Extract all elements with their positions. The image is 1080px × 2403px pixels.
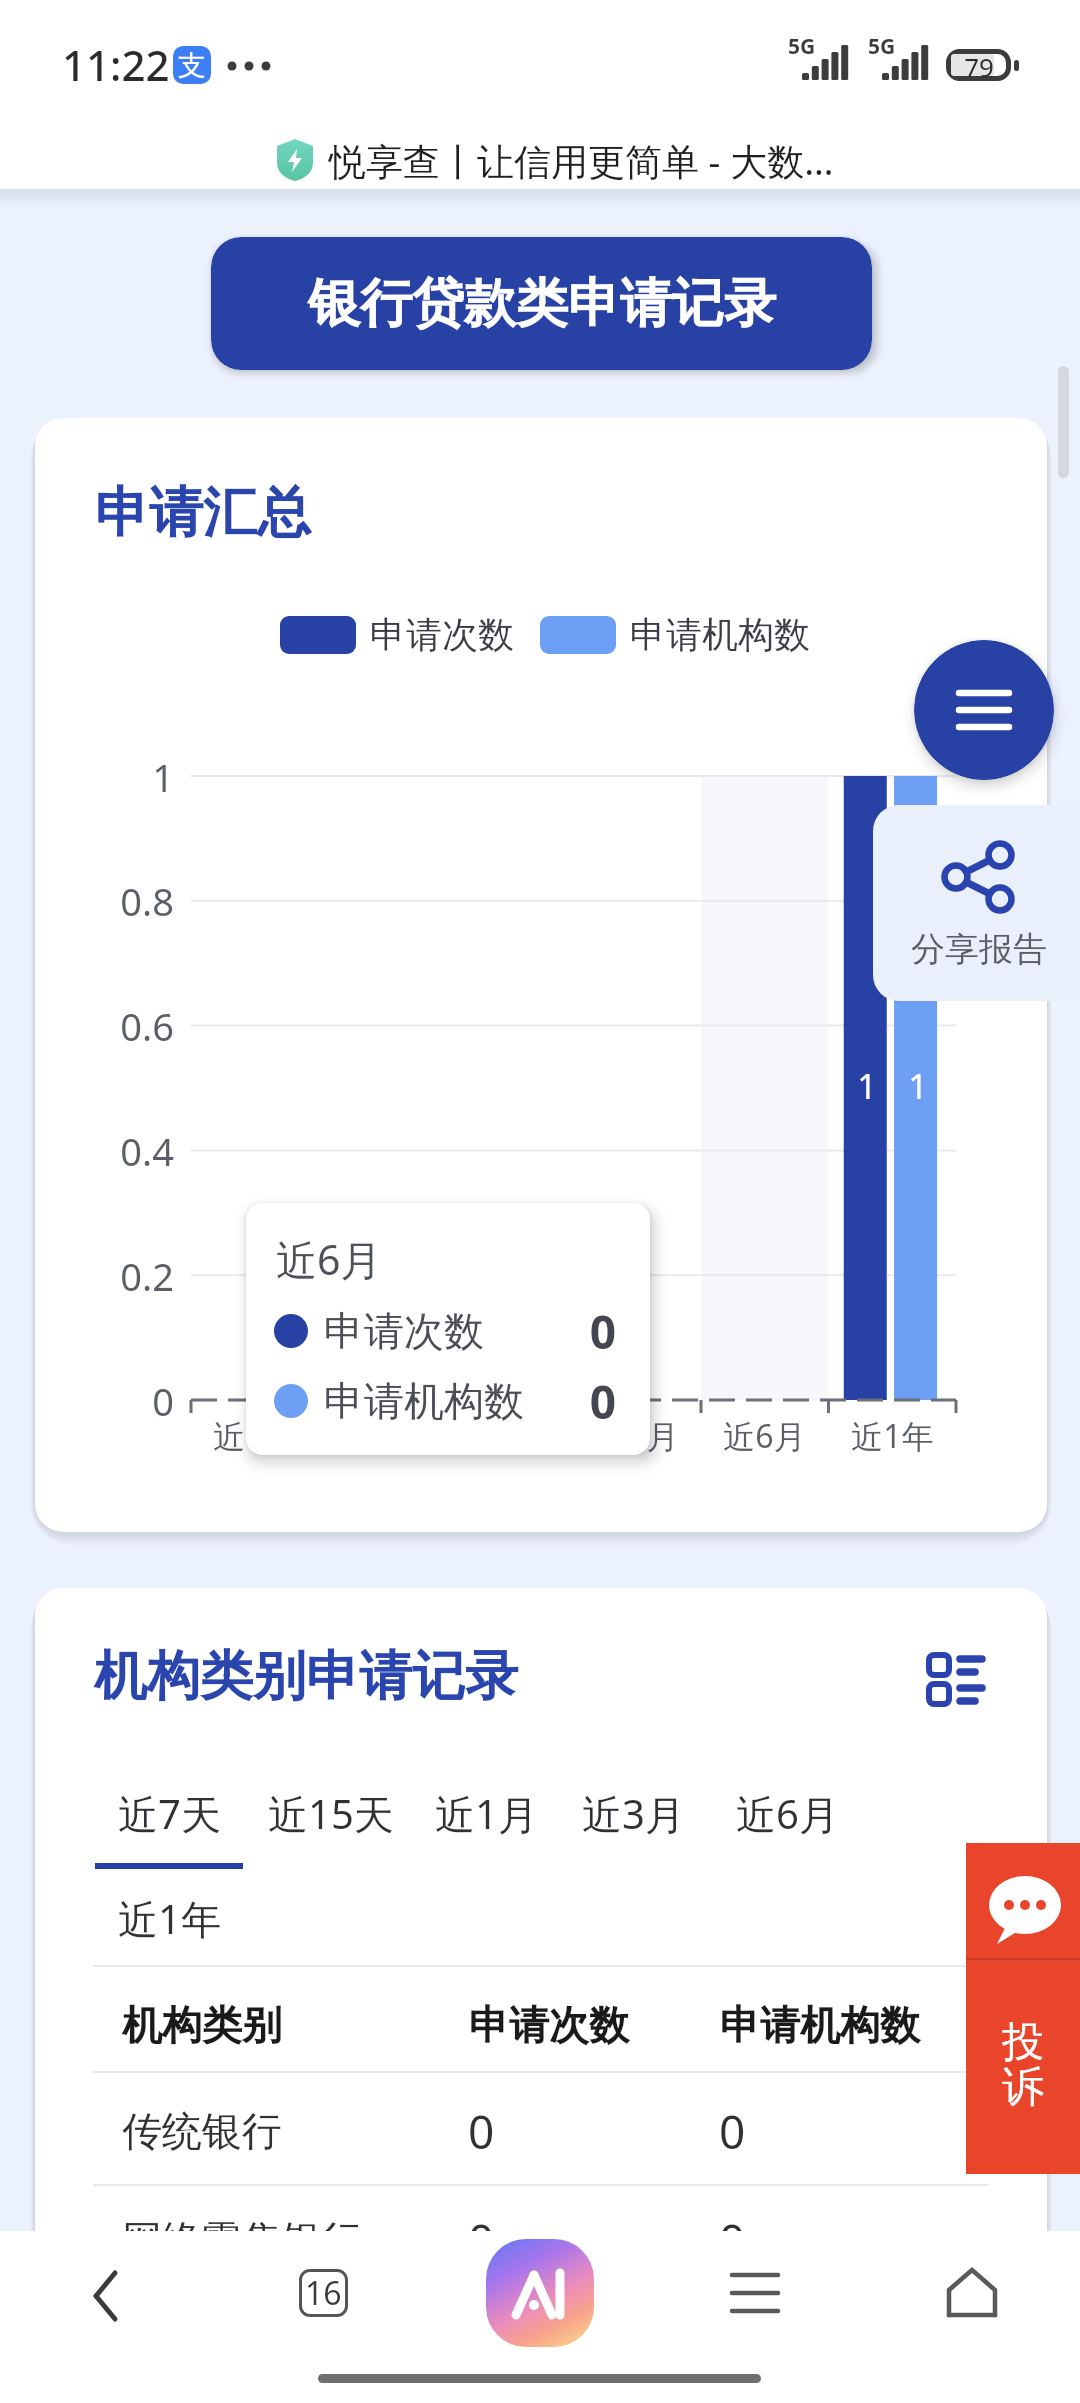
staticText: 投: [1002, 2016, 1044, 2069]
staticText: 0.8: [120, 875, 174, 927]
staticText: 近15天: [268, 1786, 394, 1841]
button[interactable]: 切换列表视图: [915, 1642, 995, 1716]
staticText: 诉: [1002, 2061, 1044, 2114]
staticText: 近3月: [582, 1786, 685, 1841]
staticText: 5G: [788, 32, 816, 58]
staticText: 近6月: [276, 1231, 382, 1287]
staticText: 近6月: [723, 1414, 806, 1458]
staticText: 0.4: [120, 1125, 174, 1177]
button[interactable]: 分享报告: [873, 805, 1080, 1001]
staticText: 传统银行: [122, 2106, 282, 2156]
staticText: 申请机构数: [324, 1376, 524, 1426]
staticText: 0.2: [120, 1250, 174, 1302]
button[interactable]: [540, 605, 810, 665]
staticText: 近1月: [468, 1414, 551, 1458]
button[interactable]: 近6月: [736, 1771, 864, 1855]
button[interactable]: 菜单: [690, 2238, 820, 2348]
staticText: 5G: [868, 32, 896, 58]
button[interactable]: 菜单: [914, 640, 1054, 780]
staticText: 机构类别申请记录: [94, 1643, 518, 1710]
staticText: 0: [589, 1300, 616, 1363]
staticText: 16: [305, 2271, 342, 2315]
button[interactable]: 返回: [41, 2241, 171, 2351]
staticText: 申请汇总: [95, 479, 311, 547]
button[interactable]: 标签页: [258, 2238, 388, 2348]
staticText: 申请次数: [324, 1306, 484, 1356]
staticText: 机构类别: [122, 2000, 282, 2050]
staticText: 1: [857, 1063, 877, 1109]
staticText: 近1月: [435, 1786, 538, 1841]
button[interactable]: 主页: [907, 2238, 1037, 2348]
button[interactable]: 近1年: [118, 1876, 246, 1960]
staticText: 申请机构数: [720, 2000, 920, 2050]
staticText: 近1年: [851, 1414, 934, 1458]
staticText: 0.6: [120, 1000, 174, 1052]
staticText: 0: [719, 2100, 746, 2163]
staticText: 分享报告: [911, 928, 1047, 971]
staticText: 0: [468, 2209, 495, 2272]
button[interactable]: 近15天: [268, 1771, 436, 1855]
staticText: 近7天: [118, 1786, 221, 1841]
button[interactable]: 近1月: [435, 1771, 563, 1855]
staticText: 79: [964, 49, 994, 81]
staticText: 申请机构数: [630, 612, 810, 657]
staticText: 网络零售银行: [122, 2215, 362, 2265]
staticText: 悦享查丨让信用更简单 - 大数…: [329, 135, 834, 186]
staticText: 11:22: [62, 36, 170, 93]
staticText: 申请次数: [370, 612, 514, 657]
staticText: 近7天: [213, 1414, 296, 1458]
staticText: 0: [468, 2100, 495, 2163]
button[interactable]: AI 助手: [475, 2238, 605, 2348]
staticText: 银行贷款类申请记录: [308, 271, 776, 337]
staticText: 近6月: [736, 1786, 839, 1841]
staticText: 支: [178, 48, 206, 83]
button[interactable]: 近3月: [582, 1771, 710, 1855]
button[interactable]: 银行贷款类申请记录: [211, 237, 872, 370]
button[interactable]: [280, 605, 515, 665]
staticText: 近15天: [332, 1414, 433, 1458]
staticText: 1: [908, 1063, 928, 1109]
staticText: 近1年: [118, 1891, 221, 1946]
staticText: 0: [719, 2209, 746, 2272]
staticText: 近3月: [596, 1414, 679, 1458]
button[interactable]: 投诉: [966, 1843, 1080, 2174]
button[interactable]: 近7天: [118, 1771, 246, 1855]
staticText: 0: [152, 1375, 174, 1427]
staticText: 0: [589, 1370, 616, 1433]
staticText: 申请次数: [469, 2000, 629, 2050]
staticText: 1: [152, 751, 174, 803]
